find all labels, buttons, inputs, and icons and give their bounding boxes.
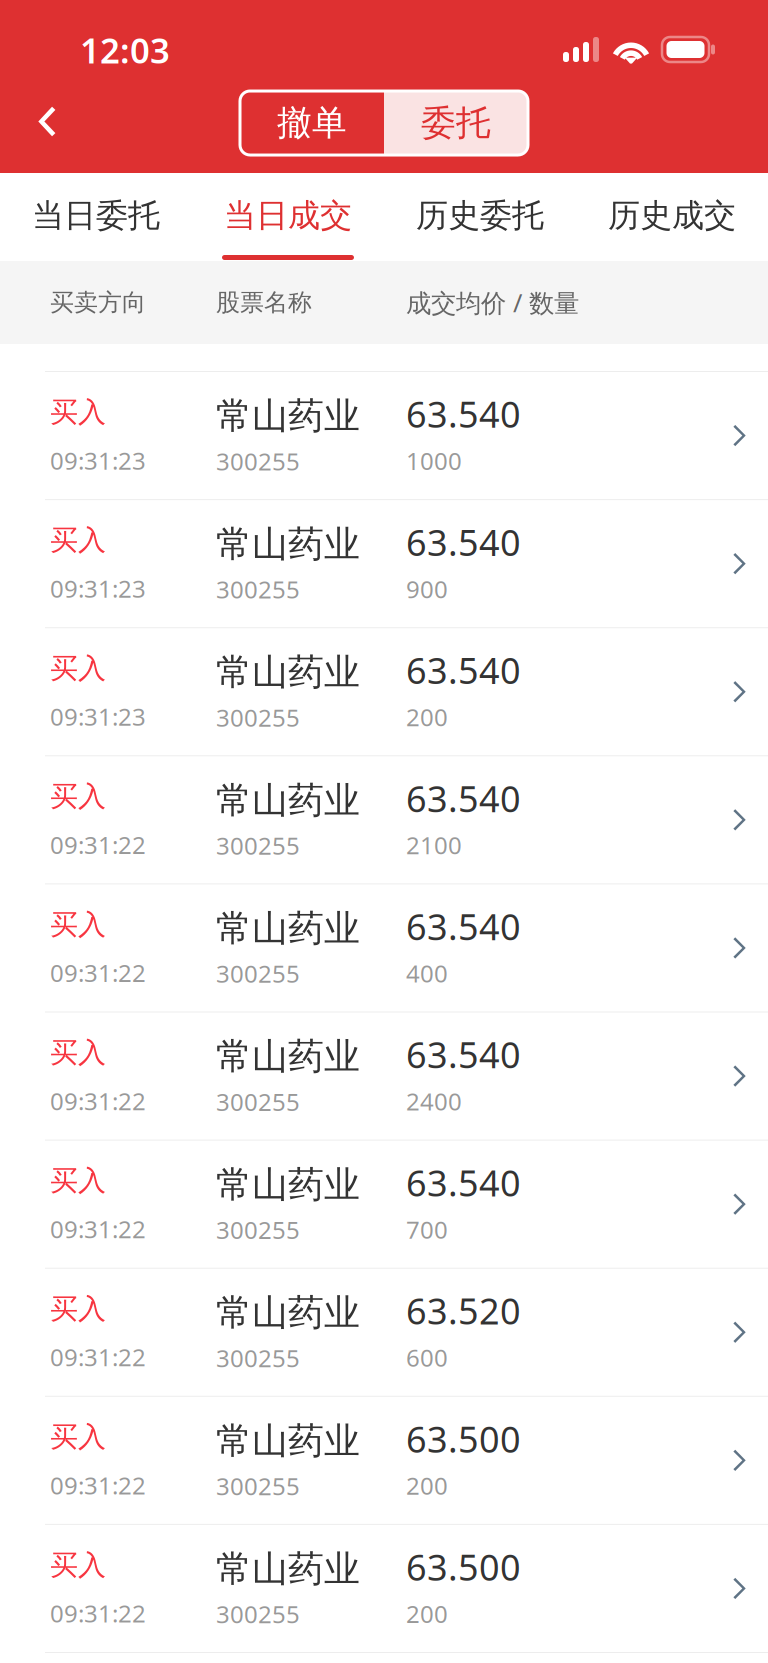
staticText: 2400 bbox=[406, 1085, 462, 1117]
staticText: 300255 bbox=[216, 1470, 300, 1502]
staticText: 买入 bbox=[50, 651, 106, 686]
staticText: 股票名称 bbox=[216, 288, 312, 317]
staticText: 09:31:23 bbox=[50, 572, 146, 604]
button[interactable]: 买入 bbox=[0, 1011, 768, 1140]
staticText: 63.500 bbox=[406, 1543, 521, 1591]
staticText: 当日委托 bbox=[32, 196, 160, 235]
staticText: 200 bbox=[406, 701, 448, 733]
staticText: 常山药业 bbox=[216, 522, 360, 566]
staticText: 常山药业 bbox=[216, 1163, 360, 1207]
staticText: 900 bbox=[406, 573, 448, 605]
staticText: 63.540 bbox=[406, 390, 521, 438]
button[interactable]: 买入 bbox=[0, 1396, 768, 1524]
staticText: 买入 bbox=[50, 523, 106, 557]
button[interactable]: 买入 bbox=[0, 883, 768, 1011]
staticText: 63.540 bbox=[406, 518, 521, 566]
button[interactable]: 买入 bbox=[0, 1140, 768, 1268]
staticText: 600 bbox=[406, 1341, 448, 1373]
staticText: 买入 bbox=[50, 1548, 106, 1582]
staticText: 撤单 bbox=[277, 102, 347, 144]
staticText: 300255 bbox=[216, 445, 300, 477]
staticText: 当日成交 bbox=[224, 196, 352, 235]
staticText: 09:31:22 bbox=[50, 1213, 146, 1245]
button[interactable]: 当日委托 bbox=[0, 173, 192, 261]
staticText: 常山药业 bbox=[216, 1419, 360, 1463]
staticText: 63.540 bbox=[406, 774, 521, 822]
staticText: 买入 bbox=[50, 1035, 106, 1070]
staticText: 09:31:22 bbox=[50, 1469, 146, 1501]
button[interactable]: 委托 bbox=[384, 91, 528, 155]
staticText: 63.540 bbox=[406, 646, 521, 694]
staticText: 300255 bbox=[216, 701, 300, 733]
staticText: 1000 bbox=[406, 445, 462, 477]
staticText: 09:31:22 bbox=[50, 829, 146, 861]
staticText: 09:31:22 bbox=[50, 957, 146, 989]
staticText: 12:03 bbox=[80, 27, 170, 73]
staticText: 200 bbox=[406, 1470, 448, 1501]
staticText: 200 bbox=[406, 1598, 448, 1630]
staticText: 历史委托 bbox=[416, 196, 544, 235]
staticText: 买入 bbox=[50, 1164, 106, 1198]
staticText: 63.500 bbox=[406, 1415, 521, 1463]
staticText: 400 bbox=[406, 957, 448, 989]
staticText: 63.540 bbox=[406, 902, 521, 950]
staticText: 买入 bbox=[50, 1292, 106, 1326]
staticText: 09:31:23 bbox=[50, 444, 146, 476]
button[interactable]: 当日成交 bbox=[192, 173, 384, 261]
staticText: 300255 bbox=[216, 1086, 300, 1118]
staticText: 常山药业 bbox=[216, 1291, 360, 1335]
staticText: 09:31:22 bbox=[50, 1085, 146, 1117]
staticText: 常山药业 bbox=[216, 394, 360, 438]
button[interactable]: 买入 bbox=[0, 755, 768, 883]
staticText: 300255 bbox=[216, 1214, 300, 1246]
staticText: 常山药业 bbox=[216, 1034, 360, 1079]
staticText: 成交均价 / 数量 bbox=[406, 286, 579, 319]
staticText: 09:31:22 bbox=[50, 1341, 146, 1373]
staticText: 常山药业 bbox=[216, 906, 360, 951]
button[interactable]: Back bbox=[0, 91, 92, 173]
button[interactable]: 撤单 bbox=[240, 91, 384, 155]
staticText: 300255 bbox=[216, 1598, 300, 1630]
staticText: 买入 bbox=[50, 395, 106, 429]
staticText: 买入 bbox=[50, 907, 106, 942]
staticText: 63.540 bbox=[406, 1030, 521, 1078]
staticText: 常山药业 bbox=[216, 778, 360, 822]
staticText: 买入 bbox=[50, 1420, 106, 1454]
staticText: 09:31:22 bbox=[50, 1597, 146, 1629]
button[interactable]: 买入 bbox=[0, 1268, 768, 1396]
button[interactable]: 买入 bbox=[0, 499, 768, 627]
button[interactable]: 买入 bbox=[0, 371, 768, 499]
staticText: 2100 bbox=[406, 829, 462, 861]
button[interactable]: 历史委托 bbox=[384, 173, 576, 261]
staticText: 300255 bbox=[216, 958, 300, 989]
staticText: 买卖方向 bbox=[50, 288, 146, 317]
staticText: 63.540 bbox=[406, 1159, 521, 1206]
staticText: 300255 bbox=[216, 1342, 300, 1374]
staticText: 常山药业 bbox=[216, 650, 360, 694]
staticText: 历史成交 bbox=[608, 196, 736, 235]
staticText: 300255 bbox=[216, 829, 300, 861]
staticText: 63.520 bbox=[406, 1287, 521, 1334]
button[interactable]: 买入 bbox=[0, 627, 768, 755]
button[interactable]: 买入 bbox=[0, 1524, 768, 1652]
staticText: 300255 bbox=[216, 573, 300, 605]
staticText: 委托 bbox=[421, 102, 491, 144]
staticText: 常山药业 bbox=[216, 1547, 360, 1591]
staticText: 700 bbox=[406, 1213, 448, 1245]
staticText: 09:31:23 bbox=[50, 701, 146, 732]
button[interactable]: 历史成交 bbox=[576, 173, 768, 261]
staticText: 买入 bbox=[50, 779, 106, 814]
